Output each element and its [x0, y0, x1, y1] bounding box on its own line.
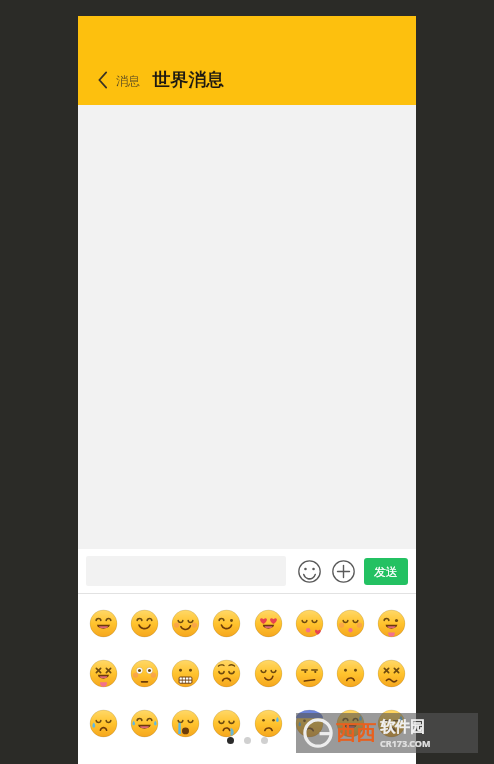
staticText: 软件园	[380, 718, 425, 737]
button[interactable]: Emoji	[333, 656, 367, 690]
staticText: 发送	[374, 564, 398, 579]
button[interactable]: 发送	[364, 558, 408, 585]
button[interactable]: Emoji	[251, 656, 285, 690]
button[interactable]: Emoji	[86, 606, 120, 640]
button[interactable]: Emoji	[374, 706, 408, 740]
staticText: 西西	[336, 721, 376, 746]
staticText: 消息	[116, 73, 140, 88]
button[interactable]: Emoji	[127, 656, 161, 690]
button[interactable]: Emoji	[209, 606, 243, 640]
button[interactable]: Emoji	[296, 558, 322, 584]
button[interactable]: Emoji	[292, 606, 326, 640]
button[interactable]: Emoji	[374, 656, 408, 690]
staticText: 世界消息	[152, 69, 224, 92]
button[interactable]: Emoji	[86, 706, 120, 740]
button[interactable]: Add attachment	[330, 558, 356, 584]
button[interactable]: Emoji	[251, 706, 285, 740]
button[interactable]: Emoji	[333, 706, 367, 740]
button[interactable]: Emoji	[333, 606, 367, 640]
button[interactable]: Emoji	[292, 656, 326, 690]
button[interactable]: Emoji	[209, 656, 243, 690]
staticText: CR173.COM	[380, 737, 431, 749]
button[interactable]: Emoji	[292, 706, 326, 740]
button[interactable]: Emoji	[127, 606, 161, 640]
button[interactable]: Emoji	[209, 706, 243, 740]
button[interactable]: Emoji	[374, 606, 408, 640]
button[interactable]: Back to 消息	[94, 67, 144, 93]
button[interactable]: Emoji	[127, 706, 161, 740]
button[interactable]: Emoji	[168, 606, 202, 640]
button[interactable]: Emoji	[168, 706, 202, 740]
button[interactable]: Emoji	[168, 656, 202, 690]
button[interactable]: Emoji	[86, 656, 120, 690]
button[interactable]: Emoji	[251, 606, 285, 640]
